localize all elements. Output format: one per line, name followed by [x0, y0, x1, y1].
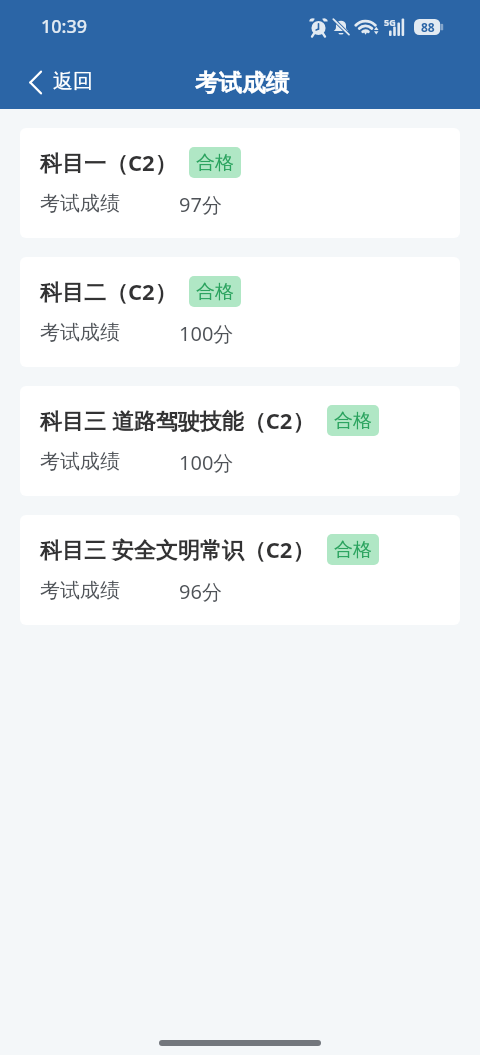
staticText: 科目二（C2） [40, 276, 177, 306]
button[interactable]: 科目三 道路驾驶技能（C2） [20, 386, 460, 496]
staticText: 合格 [334, 409, 372, 433]
staticText: 考试成绩 [40, 320, 120, 345]
staticText: 100分 [179, 449, 234, 476]
staticText: 100分 [179, 320, 234, 347]
button[interactable]: 科目三 安全文明常识（C2） [20, 515, 460, 625]
staticText: 10:39 [41, 14, 88, 39]
staticText: 合格 [196, 280, 234, 304]
staticText: 88 [421, 19, 435, 35]
staticText: 合格 [196, 151, 234, 175]
staticText: 科目三 道路驾驶技能（C2） [40, 405, 315, 435]
staticText: 96分 [179, 578, 222, 605]
staticText: 考试成绩 [40, 578, 120, 603]
staticText: 考试成绩 [40, 191, 120, 216]
staticText: 科目三 安全文明常识（C2） [40, 534, 315, 564]
button[interactable]: 科目一（C2） [20, 128, 460, 238]
staticText: 合格 [334, 538, 372, 562]
staticText: 考试成绩 [195, 68, 289, 98]
button[interactable]: 返回 [0, 52, 107, 109]
staticText: 5G [384, 16, 396, 28]
staticText: 返回 [53, 69, 93, 94]
staticText: 考试成绩 [40, 449, 120, 474]
staticText: 科目一（C2） [40, 147, 177, 177]
button[interactable]: 科目二（C2） [20, 257, 460, 367]
staticText: 97分 [179, 191, 222, 218]
